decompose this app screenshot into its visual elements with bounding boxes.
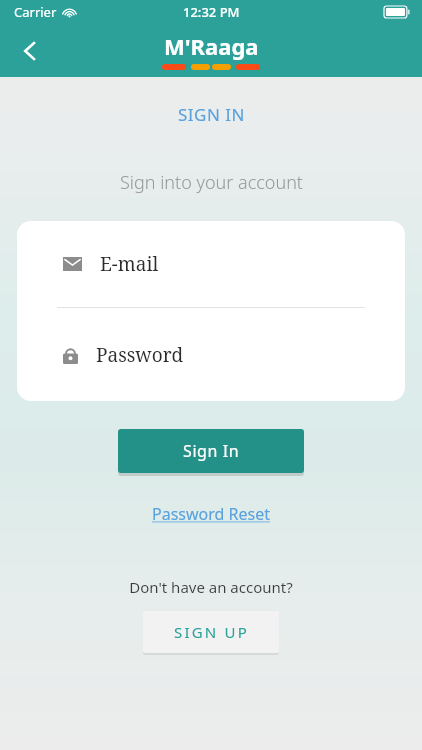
staticText: SIGN IN [178, 103, 245, 126]
button[interactable]: Sign In [118, 429, 304, 473]
staticText: Don't have an account? [129, 577, 293, 597]
staticText: Password Reset [152, 503, 270, 525]
button[interactable]: E-mail [17, 221, 405, 307]
staticText: Password [96, 342, 184, 368]
staticText: E-mail [100, 251, 159, 277]
staticText: 12:32 PM [183, 3, 240, 21]
staticText: SIGN UP [174, 622, 249, 642]
staticText: Carrier [14, 3, 57, 21]
button[interactable]: Password Reset [138, 497, 284, 531]
staticText: Sign into your account [120, 170, 303, 195]
staticText: M'Raaga [164, 31, 259, 61]
staticText: Sign In [183, 440, 240, 462]
button[interactable]: SIGN UP [143, 611, 279, 653]
button[interactable]: Back [8, 29, 52, 73]
button[interactable]: SIGN IN [162, 99, 261, 130]
button[interactable]: Password [17, 308, 405, 401]
